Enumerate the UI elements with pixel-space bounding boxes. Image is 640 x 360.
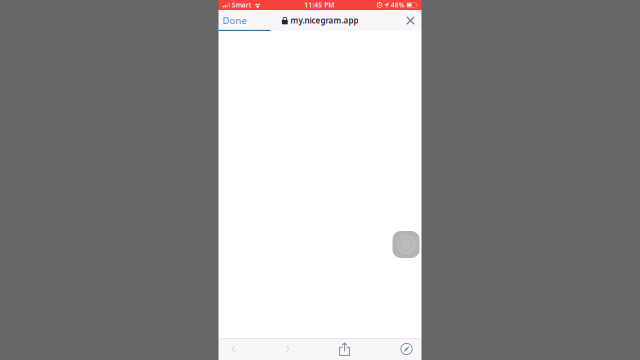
button[interactable]: Share [326,338,362,360]
button[interactable]: Back [218,338,248,360]
staticText: 48% [391,1,405,9]
button[interactable]: AssistiveTouch [392,231,419,258]
button[interactable]: Forward [248,338,326,360]
staticText: Smart [232,1,252,9]
button[interactable]: Open in Safari [391,338,421,360]
staticText: my.nicegram.app [290,15,358,26]
staticText: Done [222,14,246,27]
button[interactable]: Close [402,10,421,31]
staticText: 11:45 PM [304,1,334,9]
button[interactable]: Done [218,10,260,31]
